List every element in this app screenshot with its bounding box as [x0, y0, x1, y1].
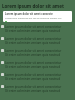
- staticText: Lorem ipsum dolor sit amet: [2, 3, 64, 9]
- staticText: Consectetur adipiscing elit sed do eiusm…: [5, 17, 62, 20]
- staticText: Lorem ipsum dolor sit amet consectetur a…: [5, 73, 75, 77]
- staticText: Lorem ipsum dolor sit amet consectetur a…: [5, 37, 75, 41]
- button[interactable]: Lorem ipsum dolor sit amet consectetur a…: [0, 59, 75, 71]
- staticText: Lorem ipsum dolor sit amet consectetur a…: [5, 61, 75, 65]
- button[interactable]: Lorem ipsum dolor sit amet consectetur a…: [0, 47, 75, 59]
- button[interactable]: Lorem ipsum dolor sit amet consectetur a…: [0, 71, 75, 83]
- staticText: Ut enim ad minim veniam quis nostrud exe…: [5, 41, 75, 45]
- staticText: Lorem ipsum dolor sit amet consecte: [5, 12, 53, 16]
- staticText: Ut enim ad minim veniam quis nostrud exe…: [5, 53, 75, 57]
- button[interactable]: Lorem ipsum dolor sit amet consecte: [3, 11, 72, 22]
- staticText: Ut enim ad minim veniam quis nostrud exe…: [5, 89, 75, 93]
- staticText: Ut enim ad minim veniam quis nostrud exe…: [5, 77, 75, 81]
- staticText: Ut enim ad minim veniam quis nostrud exe…: [5, 29, 75, 33]
- button[interactable]: Lorem ipsum dolor sit amet consectetur a…: [0, 35, 75, 47]
- staticText: Lorem ipsum dolor sit amet consectetur a…: [5, 49, 75, 53]
- staticText: Lorem ipsum dolor sit amet consectetur a…: [5, 85, 75, 89]
- staticText: Ut enim ad minim veniam quis nostrud exe…: [5, 65, 75, 69]
- button[interactable]: Lorem ipsum dolor sit amet consectetur a…: [0, 23, 75, 35]
- button[interactable]: Lorem ipsum dolor sit amet consectetur a…: [0, 83, 75, 95]
- staticText: Lorem ipsum dolor sit amet consectetur a…: [5, 25, 75, 29]
